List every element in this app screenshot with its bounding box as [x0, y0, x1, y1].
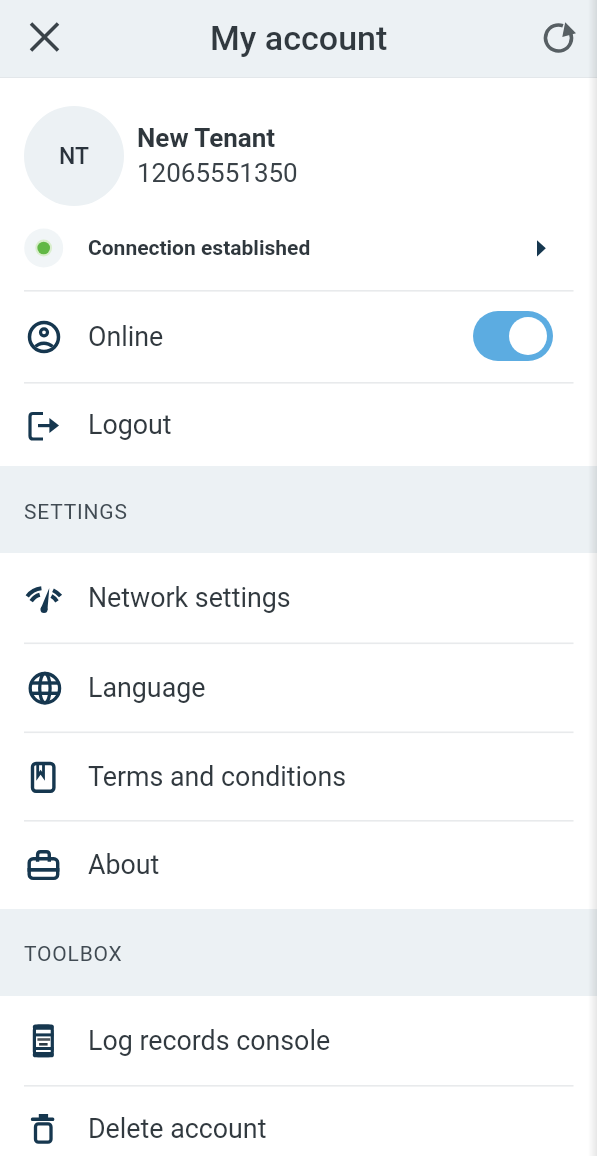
staticText: Terms and conditions: [88, 761, 347, 792]
staticText: Language: [88, 672, 206, 703]
button[interactable]: [542, 21, 578, 57]
staticText: NT: [59, 143, 89, 170]
button[interactable]: Network settings: [0, 553, 597, 642]
staticText: About: [88, 849, 160, 880]
button[interactable]: Online: [0, 291, 597, 382]
staticText: Network settings: [88, 582, 291, 613]
button[interactable]: [473, 311, 553, 361]
staticText: Logout: [88, 409, 172, 440]
staticText: Online: [88, 321, 164, 352]
button[interactable]: Delete account: [0, 1085, 597, 1156]
staticText: Connection established: [88, 236, 311, 261]
button[interactable]: About: [0, 820, 597, 909]
button[interactable]: Connection established: [0, 206, 597, 290]
button[interactable]: [27, 21, 63, 57]
staticText: My account: [210, 18, 388, 58]
staticText: Delete account: [88, 1113, 267, 1144]
staticText: SETTINGS: [24, 500, 128, 525]
staticText: TOOLBOX: [24, 942, 123, 967]
staticText: 12065551350: [137, 158, 298, 188]
staticText: New Tenant: [137, 123, 276, 153]
button[interactable]: Terms and conditions: [0, 732, 597, 820]
button[interactable]: Language: [0, 643, 597, 731]
button[interactable]: Log records console: [0, 996, 597, 1085]
button[interactable]: Logout: [0, 383, 597, 466]
staticText: Log records console: [88, 1025, 331, 1056]
